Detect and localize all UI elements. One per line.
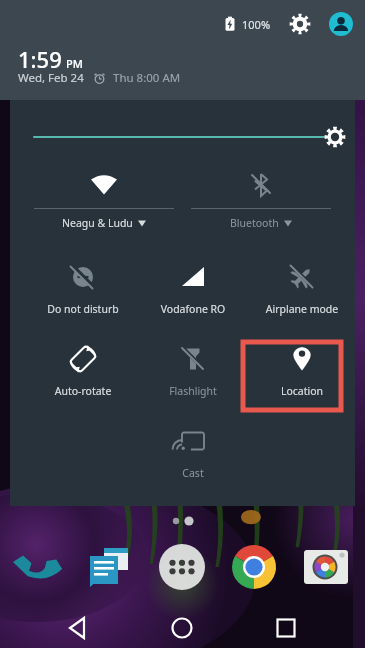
staticText: Cast	[144, 466, 242, 480]
button[interactable]: Battery	[222, 16, 238, 32]
staticText: Do not disturb	[34, 302, 132, 316]
button[interactable]: Recent apps	[268, 610, 304, 646]
staticText: Wed, Feb 24	[18, 70, 84, 86]
button[interactable]: Chrome	[230, 543, 278, 591]
button[interactable]: Cast	[144, 424, 242, 480]
button[interactable]: Auto-rotate	[34, 342, 132, 398]
button[interactable]: Do not disturb	[34, 260, 132, 316]
staticText: 1:59	[18, 44, 62, 74]
button[interactable]: Brightness	[30, 122, 335, 152]
button[interactable]: All apps	[158, 543, 206, 591]
button[interactable]: Flashlight	[144, 342, 242, 398]
staticText: Neagu & Ludu	[62, 216, 133, 230]
button[interactable]: Phone	[11, 543, 59, 591]
button[interactable]: Airplane mode	[253, 260, 351, 316]
staticText: Bluetooth	[230, 216, 279, 230]
staticText: Thu 8:00 AM	[113, 70, 181, 86]
button[interactable]: Mobile data	[144, 260, 242, 316]
staticText: Auto-rotate	[34, 384, 132, 398]
staticText: Airplane mode	[253, 302, 351, 316]
button[interactable]: Brightness level	[323, 125, 347, 149]
button[interactable]: Messages	[84, 543, 132, 591]
staticText: Vodafone RO	[144, 302, 242, 316]
button[interactable]: Location	[253, 342, 351, 398]
button[interactable]: Settings	[289, 13, 311, 35]
button[interactable]: Bluetooth	[191, 168, 331, 230]
staticText: Flashlight	[144, 384, 242, 398]
button[interactable]: Home	[164, 610, 200, 646]
staticText: 100%	[242, 17, 271, 32]
button[interactable]: Wi-Fi	[34, 168, 174, 230]
staticText: Location	[253, 384, 351, 398]
button[interactable]: Camera	[302, 543, 350, 591]
staticText: PM	[66, 56, 83, 71]
button[interactable]: User profile	[329, 12, 353, 36]
button[interactable]: Back	[60, 610, 96, 646]
